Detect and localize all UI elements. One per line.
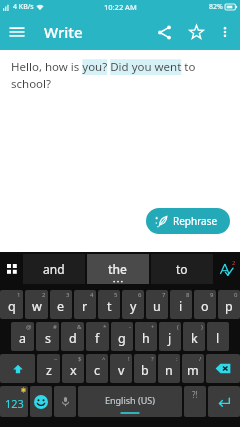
staticText: z — [46, 362, 52, 379]
staticText: w — [32, 298, 42, 315]
button[interactable]: Voice input — [54, 386, 76, 417]
button[interactable]: r — [74, 290, 96, 319]
button[interactable]: d — [61, 322, 84, 351]
staticText: # — [53, 323, 57, 331]
button[interactable]: b — [134, 354, 156, 383]
button[interactable]: z — [37, 354, 60, 383]
button[interactable]: q — [0, 290, 23, 319]
staticText: s — [45, 330, 51, 347]
button[interactable]: the — [87, 254, 149, 284]
button[interactable]: Enter — [208, 386, 240, 417]
staticText: 4 KB/s — [13, 2, 34, 12]
button[interactable]: w — [25, 290, 48, 319]
staticText: 1 — [17, 291, 21, 299]
staticText: i — [179, 298, 183, 315]
staticText: 2 — [232, 259, 236, 267]
button[interactable]: u — [146, 290, 168, 319]
staticText: m — [187, 362, 199, 379]
button[interactable]: j — [159, 322, 181, 351]
staticText: b — [141, 362, 149, 379]
staticText: 6 — [138, 291, 142, 299]
button[interactable]: and — [23, 254, 85, 284]
staticText: k — [191, 330, 198, 347]
button[interactable]: ?! — [184, 386, 206, 417]
staticText: j — [168, 330, 172, 347]
button[interactable]: Backspace — [206, 354, 240, 383]
button[interactable]: to — [151, 254, 213, 284]
button[interactable]: Share — [148, 16, 180, 48]
staticText: / — [199, 355, 202, 363]
button[interactable]: e — [50, 290, 72, 319]
staticText: ~ — [54, 355, 58, 363]
staticText: : — [176, 355, 178, 363]
button[interactable]: Rephrase — [146, 208, 230, 234]
staticText: 0 — [234, 291, 238, 299]
staticText: e — [57, 298, 65, 315]
button[interactable]: Grammar check — [213, 254, 239, 284]
staticText: a — [19, 330, 27, 347]
button[interactable]: t — [98, 290, 120, 319]
staticText: 123 — [5, 396, 24, 411]
button[interactable]: f — [86, 322, 109, 351]
button[interactable]: i — [170, 290, 192, 319]
staticText: 8 — [186, 291, 190, 299]
staticText: 5 — [114, 291, 118, 299]
staticText: & — [77, 323, 82, 331]
staticText: ^ — [102, 355, 106, 363]
button[interactable]: More options — [212, 19, 238, 45]
staticText: 2 — [42, 291, 46, 299]
button[interactable]: v — [110, 354, 132, 383]
staticText: 9 — [210, 291, 214, 299]
staticText: ?! — [192, 389, 198, 400]
staticText: ( — [177, 323, 179, 331]
staticText: c — [94, 362, 101, 379]
staticText: ) — [201, 323, 203, 331]
staticText: u — [153, 298, 161, 315]
staticText: ? — [151, 355, 154, 363]
button[interactable]: x — [62, 354, 84, 383]
staticText: o — [201, 298, 209, 315]
staticText: r — [82, 298, 88, 315]
button[interactable]: n — [158, 354, 180, 383]
staticText: Rephrase — [173, 214, 218, 228]
button[interactable]: g — [111, 322, 133, 351]
staticText: g — [118, 330, 126, 347]
staticText: y — [130, 298, 137, 315]
button[interactable]: m — [182, 354, 204, 383]
staticText: English (US) — [105, 394, 155, 406]
staticText: @ — [26, 323, 32, 331]
staticText: 4 — [90, 291, 94, 299]
button[interactable]: y — [122, 290, 144, 319]
staticText: 7 — [162, 291, 166, 299]
staticText: + — [151, 323, 155, 331]
staticText: - — [129, 323, 131, 331]
staticText: to — [176, 261, 188, 277]
button[interactable]: o — [194, 290, 216, 319]
button[interactable]: Favorite — [180, 16, 212, 48]
button[interactable]: a — [11, 322, 34, 351]
staticText: v — [118, 362, 125, 379]
button[interactable]: k — [183, 322, 205, 351]
button[interactable]: h — [135, 322, 157, 351]
staticText: Hello, how is you? Did you went to schoo… — [11, 59, 226, 91]
staticText: and — [43, 261, 65, 277]
button[interactable]: Menu — [0, 15, 34, 49]
staticText: q — [8, 298, 16, 315]
staticText: p — [225, 298, 233, 315]
button[interactable]: l — [207, 322, 229, 351]
button[interactable]: English (US) — [78, 386, 182, 417]
button[interactable]: p — [218, 290, 240, 319]
staticText: n — [165, 362, 173, 379]
staticText: Write — [44, 22, 83, 42]
staticText: l — [216, 330, 220, 347]
staticText: h — [142, 330, 150, 347]
button[interactable]: c — [86, 354, 108, 383]
staticText: 82% — [209, 2, 223, 12]
staticText: d — [69, 330, 77, 347]
button[interactable]: Keyboard options — [1, 254, 23, 284]
staticText: the — [108, 261, 128, 277]
button[interactable]: 123 — [0, 386, 28, 417]
button[interactable]: Emoji — [30, 386, 52, 417]
button[interactable]: s — [36, 322, 59, 351]
button[interactable]: Shift — [0, 354, 35, 383]
